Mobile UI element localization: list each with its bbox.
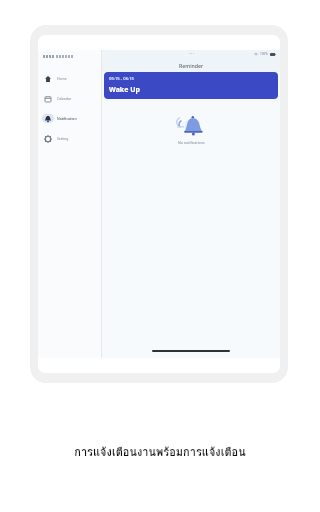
staticText: Home [57, 76, 67, 81]
staticText: No notifications [178, 140, 205, 145]
other: Notification [45, 116, 51, 122]
button[interactable]: Setting [42, 132, 98, 145]
staticText: Wake Up [109, 85, 140, 95]
button[interactable]: Notification [42, 112, 98, 125]
button[interactable]: Calendar [42, 92, 98, 105]
staticText: การแจ้งเตือนงานพร้อมการแจ้งเตือน [74, 443, 246, 460]
staticText: 05:15 - 06:15 [109, 76, 134, 82]
staticText: Setting [57, 136, 69, 141]
other: Setting [45, 136, 51, 142]
button[interactable]: 05:15 - 06:15 [104, 72, 278, 99]
other: Calendar [45, 96, 51, 102]
staticText: Notification [57, 116, 77, 121]
button[interactable]: Home [42, 72, 98, 85]
other: Home [45, 76, 51, 82]
staticText: Reminder [179, 62, 204, 69]
staticText: 100% [260, 52, 268, 56]
staticText: Calendar [57, 96, 72, 101]
